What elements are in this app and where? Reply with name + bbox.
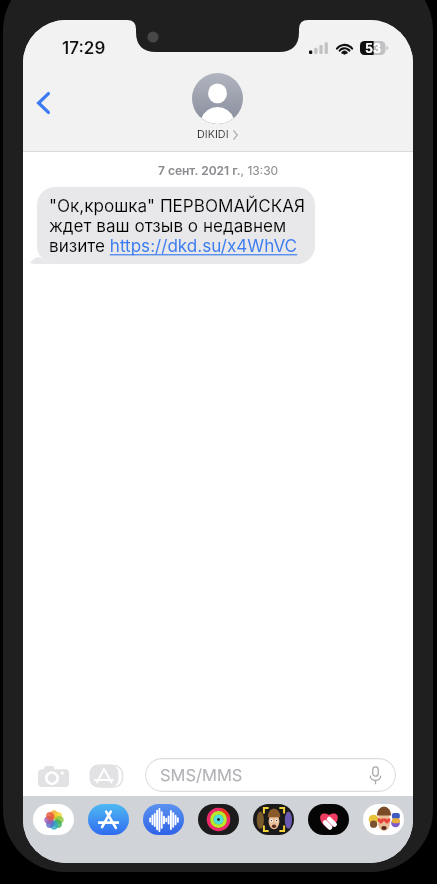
button[interactable]: DIKIDI [191, 73, 243, 141]
button[interactable]: Apps [85, 760, 123, 792]
button[interactable]: Stickers [363, 804, 404, 835]
button[interactable]: Fitness [198, 804, 239, 835]
button[interactable]: Back [24, 84, 62, 122]
staticText: DIKIDI [197, 128, 229, 141]
button[interactable]: Digital Touch [308, 804, 349, 835]
button[interactable]: Memoji [253, 804, 294, 835]
button[interactable]: Voice message [364, 764, 386, 786]
staticText: 17:29 [62, 38, 106, 59]
button[interactable]: App Store [88, 804, 129, 835]
button[interactable]: Audio message [143, 804, 184, 835]
staticText: SMS/MMS [160, 765, 243, 785]
staticText: "Ок,крошка" ПЕРВОМАЙСКАЯ ждет ваш отзыв … [49, 195, 308, 256]
staticText: 7 сент. 2021 г., 13:30 [158, 163, 279, 178]
button[interactable]: Photos [33, 804, 74, 835]
button[interactable]: "Ок,крошка" ПЕРВОМАЙСКАЯ ждет ваш отзыв … [37, 187, 315, 264]
button[interactable]: SMS/MMS [145, 758, 396, 792]
button[interactable]: Camera [34, 760, 73, 792]
staticText: 53 [365, 41, 382, 55]
